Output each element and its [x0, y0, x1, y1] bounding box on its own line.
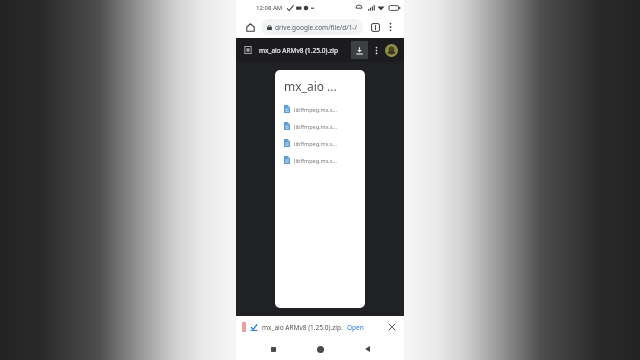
staticText: Open [347, 323, 364, 332]
staticText: mx_aio ARMv8 (1.25.0).zip. [262, 323, 343, 332]
staticText: libffmpeg.mx.s... [294, 140, 338, 147]
button[interactable]: libffmpeg.mx.s... [284, 120, 356, 132]
button[interactable]: Account [385, 44, 398, 57]
button[interactable]: File [242, 44, 254, 56]
staticText: mx_aio ARMv8 (1.25.0).zip [259, 46, 347, 55]
button[interactable]: More options [384, 20, 397, 33]
button[interactable]: libffmpeg.mx.s... [284, 154, 356, 166]
button[interactable]: Back [357, 339, 377, 359]
button[interactable]: Recents [263, 339, 283, 359]
button[interactable]: drive.google.com/file/d/1-/ [261, 19, 363, 35]
button[interactable]: Dismiss [385, 320, 399, 334]
button[interactable]: libffmpeg.mx.s... [284, 103, 356, 115]
staticText: drive.google.com/file/d/1-/ [275, 23, 357, 32]
button[interactable]: Open [346, 323, 365, 332]
button[interactable]: Download [351, 41, 368, 59]
staticText: libffmpeg.mx.s... [294, 157, 338, 164]
button[interactable]: Home [243, 20, 257, 34]
button[interactable]: More options [371, 45, 382, 56]
staticText: libffmpeg.mx.s... [294, 106, 338, 113]
button[interactable]: Tabs [368, 20, 382, 34]
button[interactable]: Home [310, 339, 330, 359]
staticText: 12:08 AM [256, 4, 283, 12]
staticText: libffmpeg.mx.s... [294, 123, 338, 130]
staticText: mx_aio ... [284, 78, 337, 94]
button[interactable]: libffmpeg.mx.s... [284, 137, 356, 149]
